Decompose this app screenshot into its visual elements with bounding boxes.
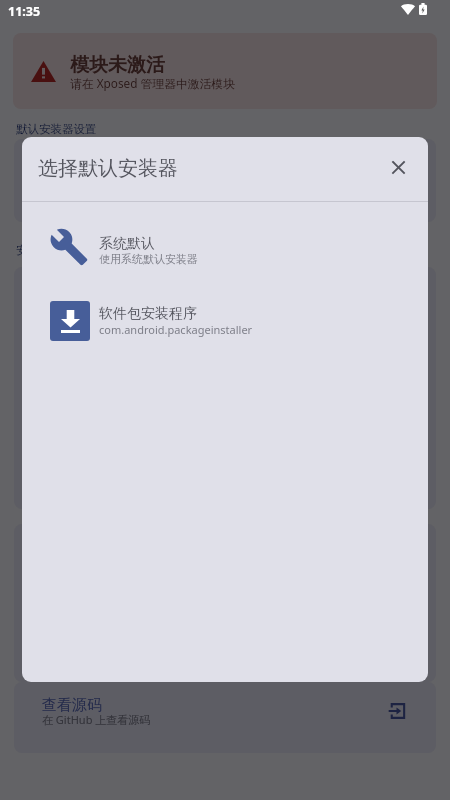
staticText: 在 GitHub 上查看源码 [42, 712, 151, 727]
staticText: 系统默认 [99, 235, 155, 253]
staticText: 查看源码 [42, 696, 102, 715]
staticText: com.android.packageinstaller [99, 322, 253, 337]
staticText: 请在 Xposed 管理器中激活模块 [70, 75, 235, 91]
staticText: 使用系统默认安装器 [99, 252, 198, 266]
staticText: 安装器设置 [16, 243, 74, 257]
staticText: 11:35 [8, 3, 41, 20]
button[interactable]: 系统默认 [22, 221, 428, 277]
other: Open source code link [374, 689, 418, 733]
button[interactable]: Close [374, 145, 420, 191]
staticText: 选择默认安装器 [38, 156, 178, 181]
button[interactable]: 软件包安装程序 [22, 292, 428, 348]
button[interactable]: 模块未激活 [13, 33, 437, 109]
staticText: 模块未激活 [70, 53, 165, 77]
button[interactable]: 查看源码 [14, 682, 436, 753]
staticText: 默认安装器设置 [16, 122, 97, 136]
staticText: 软件包安装程序 [99, 305, 197, 323]
